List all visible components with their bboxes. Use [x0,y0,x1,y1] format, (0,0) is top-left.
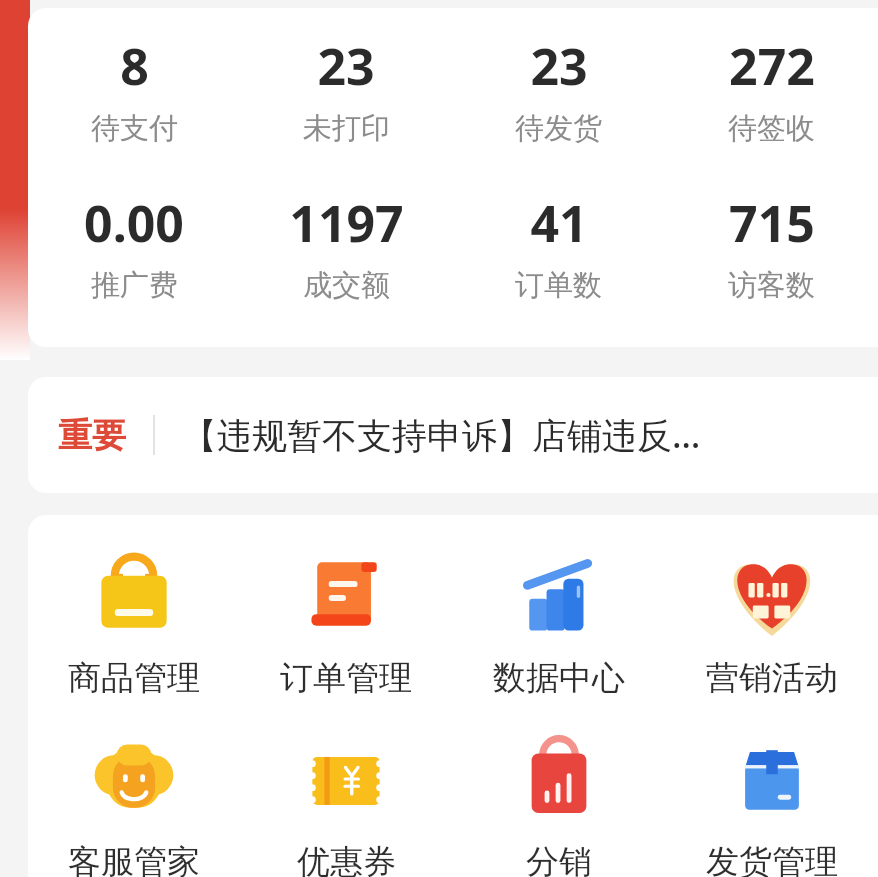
staticText: 0.00 [84,189,184,257]
staticText: 访客数 [728,267,815,304]
staticText: 272 [729,32,815,100]
staticText: 23 [530,32,588,100]
staticText: 数据中心 [493,657,625,699]
staticText: 订单管理 [280,657,412,699]
staticText: 【违规暂不支持申诉】店铺违反… [182,411,701,459]
other: 分销 [511,731,607,827]
staticText: 优惠券 [297,841,396,877]
staticText: 重要 [58,414,126,457]
staticText: 待签收 [728,110,815,147]
button[interactable]: 重要 [28,377,878,493]
button[interactable]: 商品管理 [28,547,240,699]
button[interactable]: 营销活动 [665,547,878,699]
staticText: 推广费 [91,267,178,304]
staticText: 分销 [526,841,592,877]
button[interactable]: 1197 [240,189,452,304]
other: 订单管理 [298,547,394,643]
staticText: 1197 [289,189,404,257]
staticText: 715 [729,189,815,257]
staticText: 待支付 [91,110,178,147]
staticText: 客服管家 [68,841,200,877]
staticText: 订单数 [515,267,602,304]
staticText: 成交额 [303,267,390,304]
button[interactable]: 41 [452,189,665,304]
button[interactable]: 23 [452,32,665,147]
button[interactable]: 8 [28,32,240,147]
staticText: 发货管理 [706,841,838,877]
button[interactable]: 272 [665,32,878,147]
staticText: 商品管理 [68,657,200,699]
button[interactable]: 发货管理 [665,731,878,877]
button[interactable]: 优惠券 [240,731,452,877]
staticText: 23 [317,32,375,100]
other: 数据中心 [511,547,607,643]
button[interactable]: 分销 [452,731,665,877]
button[interactable]: 715 [665,189,878,304]
staticText: 未打印 [303,110,390,147]
staticText: 41 [530,189,588,257]
button[interactable]: 8 [28,8,878,347]
button[interactable]: 23 [240,32,452,147]
other: 客服管家 [86,731,182,827]
button[interactable]: 客服管家 [28,731,240,877]
other: 发货管理 [724,731,820,827]
button[interactable]: 0.00 [28,189,240,304]
button[interactable]: 数据中心 [452,547,665,699]
other: 优惠券 [298,731,394,827]
staticText: 营销活动 [706,657,838,699]
other: 商品管理 [86,547,182,643]
staticText: 8 [120,32,149,100]
other: 营销活动 [724,547,820,643]
staticText: 待发货 [515,110,602,147]
button[interactable]: 订单管理 [240,547,452,699]
